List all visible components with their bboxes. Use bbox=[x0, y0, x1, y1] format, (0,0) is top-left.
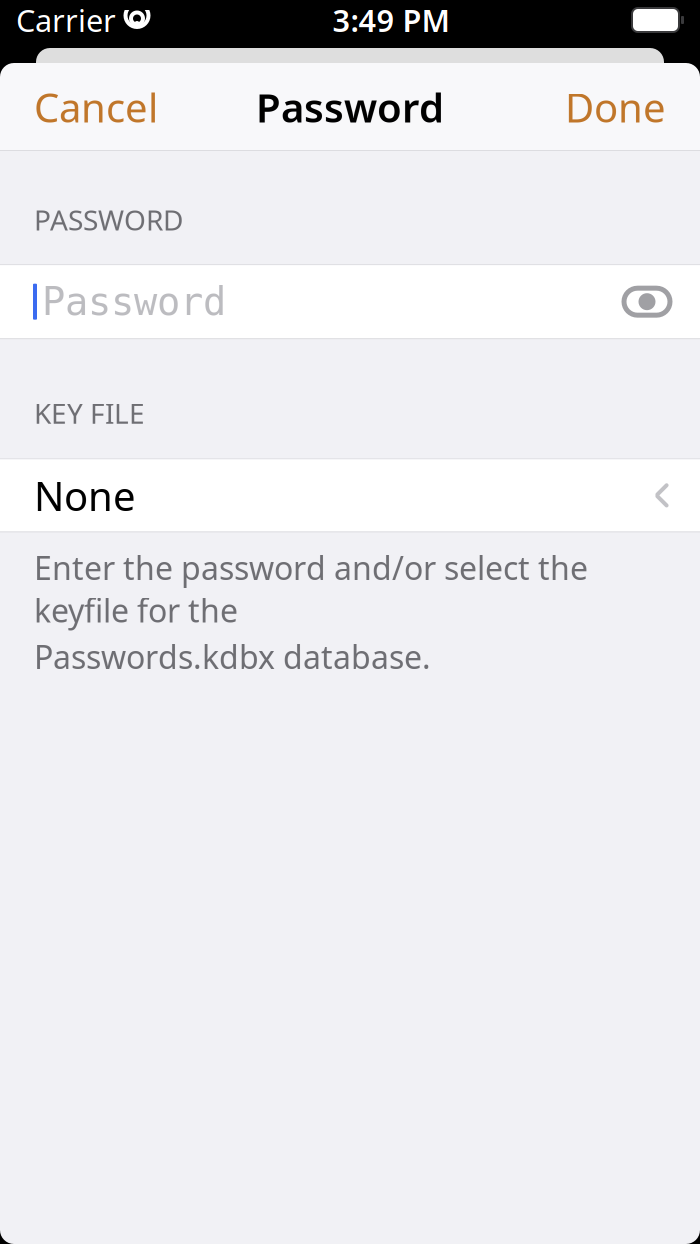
staticText: Passwords.kdbx database. bbox=[34, 635, 431, 678]
staticText: Cancel bbox=[34, 80, 158, 133]
staticText: Enter the password and/or select the key… bbox=[34, 546, 588, 631]
staticText: PASSWORD bbox=[34, 201, 183, 238]
staticText: Password bbox=[42, 280, 226, 324]
staticText: Password bbox=[256, 80, 444, 133]
staticText: KEY FILE bbox=[34, 394, 145, 431]
staticText: Done bbox=[565, 80, 666, 133]
button[interactable]: None bbox=[0, 459, 700, 531]
staticText: 3:49 PM bbox=[332, 0, 449, 40]
button[interactable]: Done bbox=[531, 63, 700, 151]
staticText: None bbox=[34, 469, 136, 522]
staticText: Carrier bbox=[16, 0, 116, 40]
button[interactable]: Password bbox=[0, 265, 700, 338]
button[interactable]: Cancel bbox=[0, 63, 192, 151]
